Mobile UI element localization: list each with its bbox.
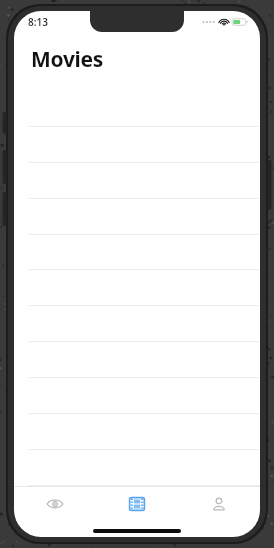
staticText: 8:13	[28, 15, 48, 29]
staticText: Movies	[31, 45, 104, 74]
button[interactable]: Watchlist	[14, 487, 96, 521]
button[interactable]: Movies	[96, 487, 178, 521]
button[interactable]: Profile	[178, 487, 260, 521]
